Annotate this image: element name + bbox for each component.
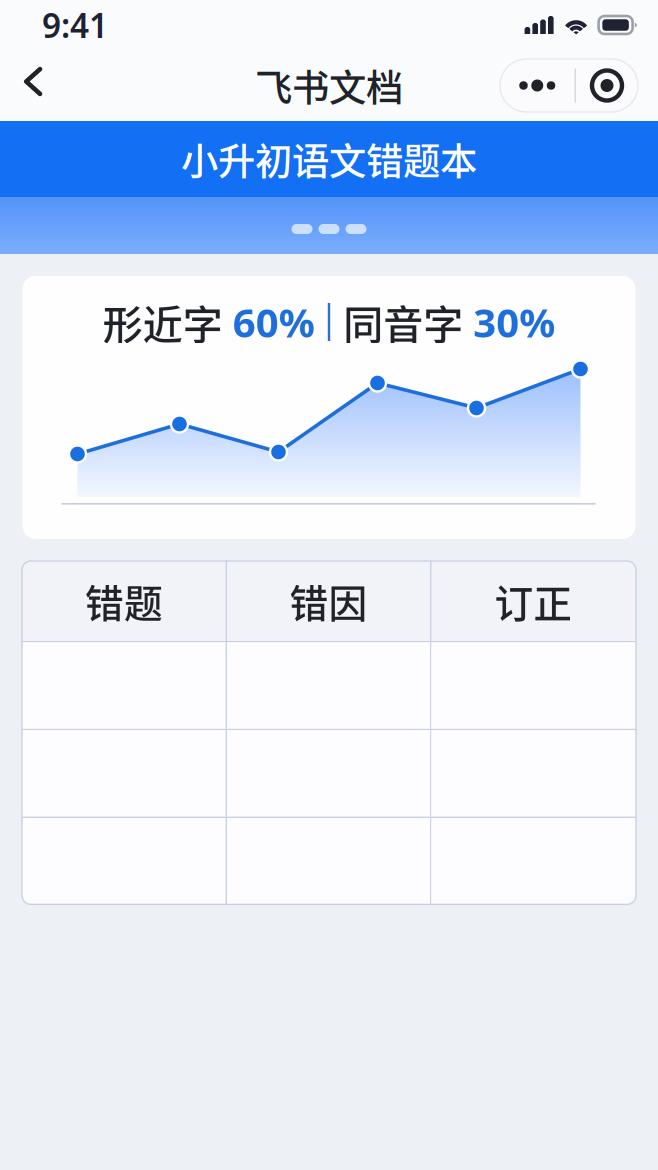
staticText: 订正 <box>494 573 572 629</box>
staticText: 飞书文档 <box>255 58 403 113</box>
button[interactable]: 更多 <box>500 59 574 112</box>
staticText: 错题 <box>85 573 163 629</box>
staticText: 形近字 <box>103 293 223 351</box>
staticText: 错因 <box>289 573 367 629</box>
staticText: 60% <box>233 295 315 348</box>
staticText: 9:41 <box>42 3 108 47</box>
staticText: 30% <box>473 295 555 348</box>
staticText: 小升初语文错题本 <box>181 132 477 186</box>
staticText: 同音字 <box>343 293 463 351</box>
button[interactable]: 返回 <box>2 54 64 116</box>
button[interactable]: 关闭 <box>576 59 638 112</box>
